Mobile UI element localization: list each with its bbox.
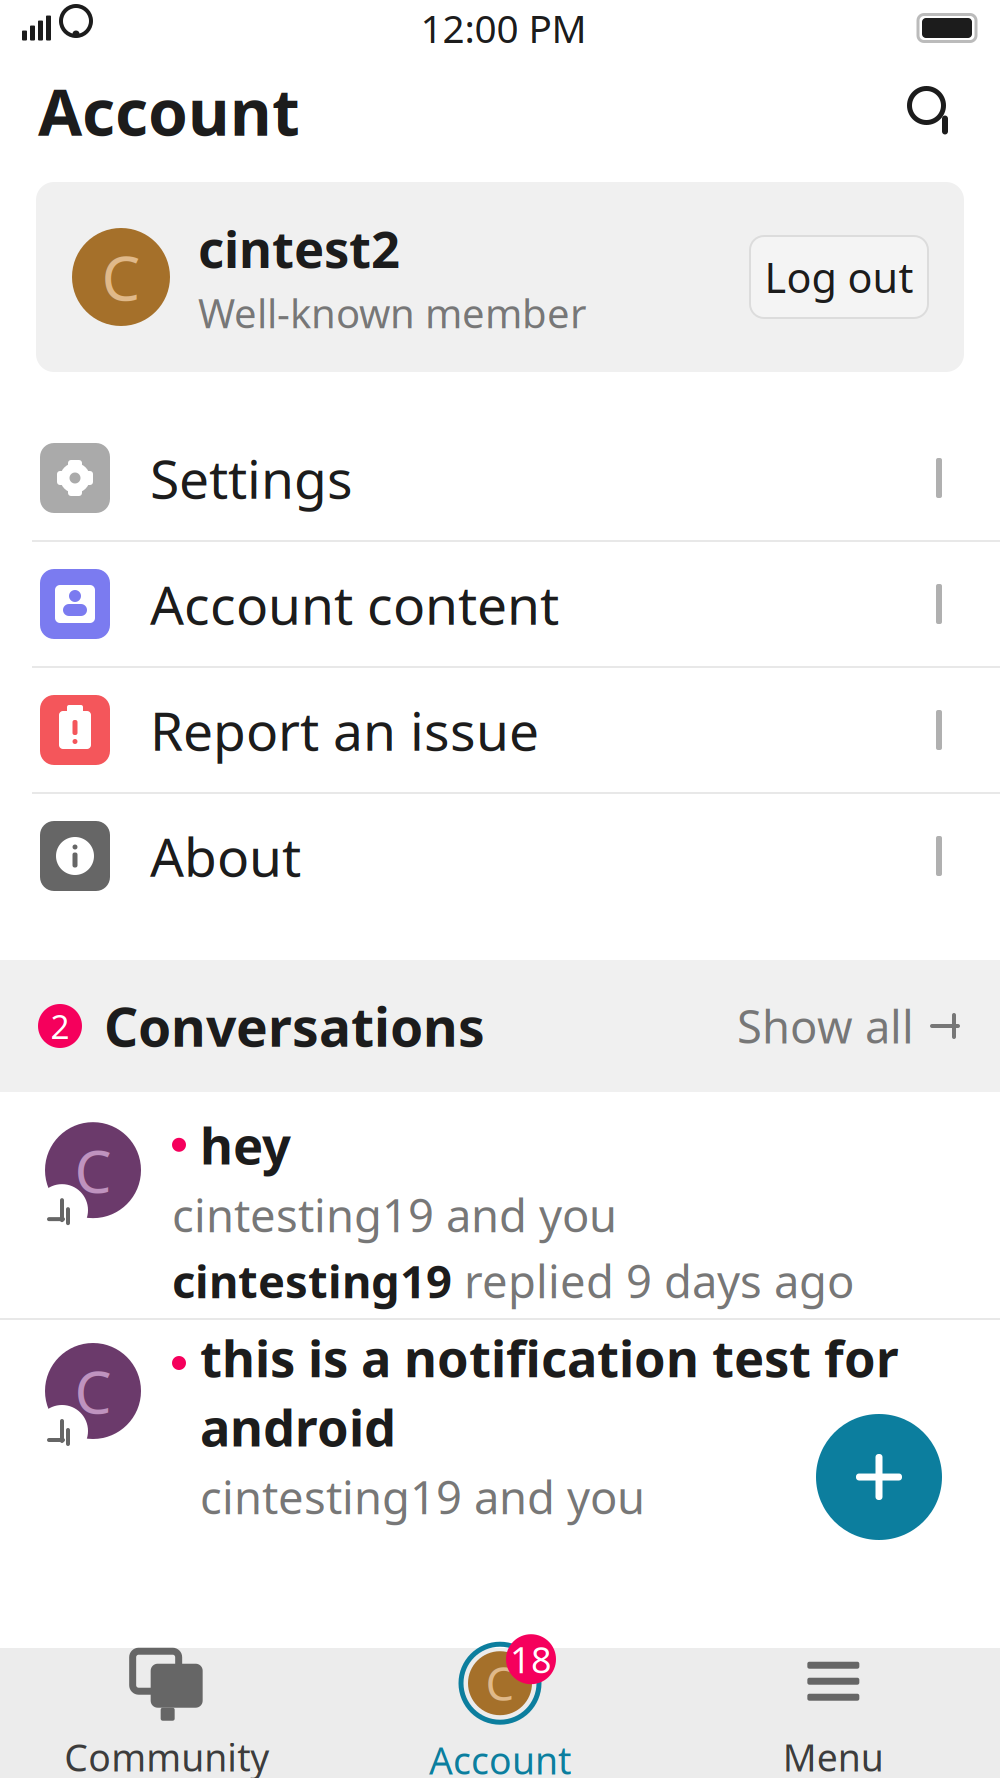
staticText: 12:00 PM	[420, 2, 586, 54]
staticText: Account	[38, 68, 300, 153]
staticText: Report an issue	[150, 695, 539, 765]
staticText: C	[485, 1653, 514, 1713]
button[interactable]: C	[0, 1092, 1000, 1318]
staticText: C	[101, 236, 140, 318]
staticText: Menu	[783, 1732, 884, 1778]
staticText: C	[74, 1131, 111, 1209]
staticText: 18	[510, 1635, 552, 1683]
button[interactable]: Show all	[737, 996, 962, 1056]
staticText: C	[74, 1352, 111, 1430]
staticText: Conversations	[104, 991, 485, 1061]
staticText: cintesting19 and you	[172, 1184, 617, 1245]
staticText: hey	[200, 1111, 291, 1178]
staticText: cintest2	[198, 215, 400, 282]
button[interactable]: About	[0, 794, 1000, 918]
button[interactable]: Community	[0, 1644, 333, 1778]
staticText: Well-known member	[198, 286, 587, 339]
button[interactable]: Menu	[667, 1644, 1000, 1778]
staticText: replied 9 days ago	[452, 1251, 854, 1311]
staticText: Account	[429, 1735, 571, 1778]
button[interactable]: Settings	[0, 416, 1000, 540]
staticText: this is a notification test for	[200, 1324, 899, 1391]
button[interactable]: C	[0, 1320, 1000, 1527]
button[interactable]: Report an issue	[0, 668, 1000, 792]
button[interactable]: Account content	[0, 542, 1000, 666]
button[interactable]: Search	[902, 81, 962, 141]
button[interactable]: C	[333, 1641, 667, 1778]
staticText: Community	[64, 1732, 269, 1778]
staticText: About	[150, 821, 301, 891]
staticText: android	[200, 1393, 396, 1461]
button[interactable]: Log out	[750, 236, 928, 318]
staticText: Show all	[737, 996, 914, 1056]
staticText: cintesting19	[172, 1251, 452, 1311]
staticText: 2	[50, 1004, 69, 1048]
staticText: cintesting19 and you	[200, 1467, 645, 1527]
staticText: Log out	[764, 250, 913, 304]
staticText: Settings	[150, 443, 353, 513]
staticText: Account content	[150, 569, 559, 639]
button[interactable]: New conversation	[816, 1414, 942, 1540]
